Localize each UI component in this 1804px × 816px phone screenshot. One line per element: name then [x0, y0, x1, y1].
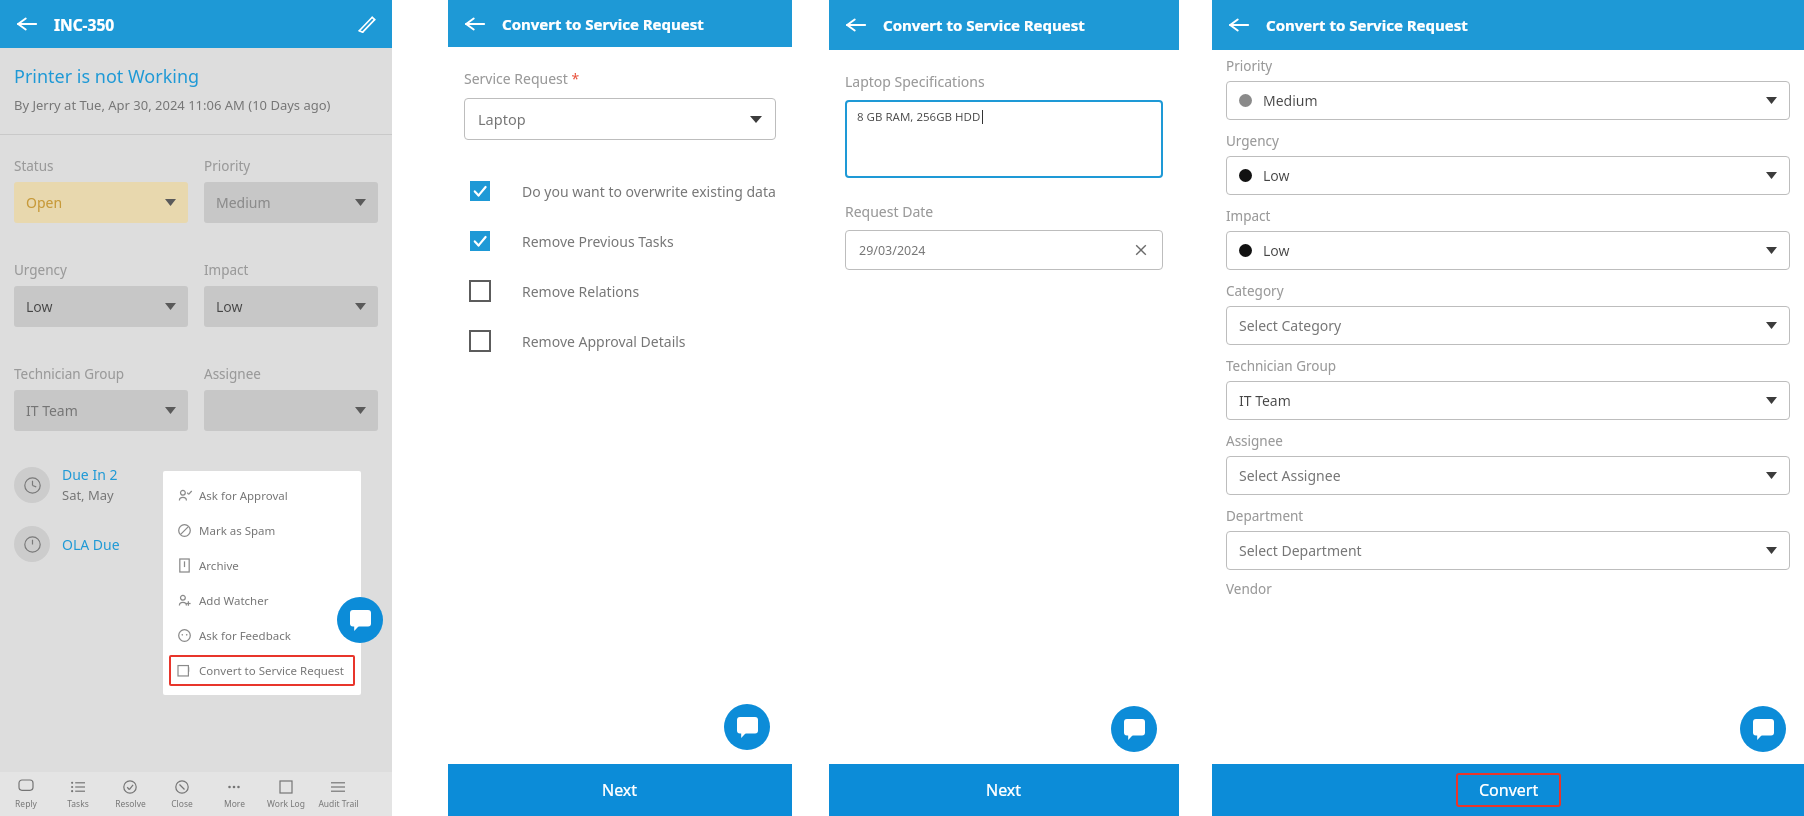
staticText: 8 GB RAM, 256GB HDD [857, 109, 981, 125]
staticText: IT Team [26, 401, 78, 420]
button[interactable]: Edit [354, 12, 378, 36]
staticText: Printer is not Working [14, 64, 200, 89]
button[interactable]: 8 GB RAM, 256GB HDD [845, 100, 1163, 178]
staticText: Close [171, 798, 193, 810]
staticText: Laptop [478, 109, 526, 129]
button[interactable]: Remove Approval Details [448, 316, 792, 366]
staticText: Remove Previous Tasks [522, 232, 674, 251]
button[interactable]: Select Assignee [1226, 456, 1790, 495]
staticText: Priority [1226, 57, 1273, 75]
button[interactable]: Low [1226, 231, 1790, 270]
staticText: Ask for Feedback [199, 628, 291, 644]
staticText: Impact [204, 261, 249, 279]
staticText: IT Team [1239, 391, 1291, 410]
staticText: More [224, 798, 245, 810]
button[interactable]: Next [448, 764, 792, 816]
staticText: Select Category [1239, 316, 1342, 335]
button[interactable]: IT Team [1226, 381, 1790, 420]
button[interactable]: 29/03/2024 [845, 230, 1163, 270]
button[interactable]: Remove Relations [448, 266, 792, 316]
button[interactable] [204, 390, 378, 431]
staticText: Urgency [14, 261, 67, 279]
button[interactable]: Chat [337, 597, 383, 643]
button[interactable]: Reply [0, 772, 52, 816]
staticText: Ask for Approval [199, 488, 288, 504]
button[interactable]: Low [14, 286, 188, 327]
button[interactable]: Laptop [464, 98, 776, 140]
button[interactable]: Back [843, 12, 869, 38]
button[interactable]: Convert to Service Request [169, 655, 355, 686]
staticText: Remove Approval Details [522, 332, 686, 351]
staticText: Medium [1263, 91, 1318, 110]
staticText: Next [602, 779, 638, 801]
button[interactable]: Medium [204, 182, 378, 223]
staticText: Open [26, 193, 63, 212]
staticText: Low [26, 297, 53, 316]
button[interactable]: Do you want to overwrite existing data [448, 166, 792, 216]
staticText: Add Watcher [199, 593, 269, 609]
button[interactable]: Open [14, 182, 188, 223]
staticText: OLA Due [62, 535, 120, 554]
staticText: Low [1263, 166, 1290, 185]
staticText: Tasks [67, 798, 89, 810]
staticText: By Jerry at Tue, Apr 30, 2024 11:06 AM (… [14, 96, 331, 114]
button[interactable]: Archive [163, 548, 361, 583]
button[interactable]: Convert [1212, 764, 1804, 816]
button[interactable]: Back [462, 11, 488, 37]
button[interactable]: Chat [1111, 706, 1157, 752]
staticText: Laptop Specifications [845, 72, 985, 91]
button[interactable]: Chat [1740, 706, 1786, 752]
staticText: Convert to Service Request [199, 663, 344, 679]
other: Back [1226, 12, 1252, 38]
other: Back [462, 11, 488, 37]
button[interactable]: Remove Previous Tasks [448, 216, 792, 266]
staticText: Department [1226, 507, 1304, 525]
button[interactable]: Select Department [1226, 531, 1790, 570]
staticText: Next [986, 779, 1022, 801]
button[interactable]: More [208, 772, 260, 816]
staticText: Select Department [1239, 541, 1362, 560]
button[interactable]: Select Category [1226, 306, 1790, 345]
staticText: Convert to Service Request [502, 14, 704, 34]
staticText: Audit Trail [318, 798, 359, 810]
staticText: Convert to Service Request [1266, 15, 1468, 35]
staticText: Convert to Service Request [883, 15, 1085, 35]
button[interactable]: IT Team [14, 390, 188, 431]
staticText: Impact [1226, 207, 1271, 225]
staticText: Request Date [845, 202, 934, 221]
button[interactable]: Chat [724, 704, 770, 750]
button[interactable]: Medium [1226, 81, 1790, 120]
staticText: Low [1263, 241, 1290, 260]
staticText: Mark as Spam [199, 523, 276, 539]
staticText: Resolve [115, 798, 146, 810]
staticText: Due In 2 [62, 465, 118, 484]
button[interactable]: Audit Trail [312, 772, 364, 816]
button[interactable]: Ask for Approval [163, 478, 361, 513]
button[interactable]: Tasks [52, 772, 104, 816]
button[interactable]: Mark as Spam [163, 513, 361, 548]
staticText: Service Request * [464, 69, 580, 88]
button[interactable]: Add Watcher [163, 583, 361, 618]
staticText: Select Assignee [1239, 466, 1341, 485]
staticText: Vendor [1226, 580, 1272, 598]
other: Back [843, 12, 869, 38]
button[interactable]: Close [156, 772, 208, 816]
staticText: Technician Group [1226, 357, 1337, 375]
staticText: Status [14, 157, 54, 175]
button[interactable]: Back [1226, 12, 1252, 38]
button[interactable]: Low [204, 286, 378, 327]
button[interactable]: Next [829, 764, 1179, 816]
staticText: Sat, May [62, 486, 114, 504]
button[interactable]: Low [1226, 156, 1790, 195]
button[interactable]: Clear date [1133, 242, 1149, 258]
staticText: Technician Group [14, 365, 125, 383]
button[interactable]: Back [14, 11, 40, 37]
button[interactable]: Work Log [260, 772, 312, 816]
staticText: Category [1226, 282, 1284, 300]
button[interactable]: Resolve [104, 772, 156, 816]
staticText: Urgency [1226, 132, 1279, 150]
other: Back [14, 11, 40, 37]
button[interactable]: Ask for Feedback [163, 618, 361, 653]
staticText: Priority [204, 157, 251, 175]
staticText: Remove Relations [522, 282, 640, 301]
